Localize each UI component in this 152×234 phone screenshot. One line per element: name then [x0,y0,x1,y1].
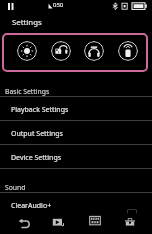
button[interactable]: ClearAudio+ [0,192,152,217]
staticText: 050 [53,1,64,9]
button[interactable]: Tools [121,212,139,230]
button[interactable]: Playback Settings [0,96,152,121]
staticText: Output Settings [11,129,63,139]
button[interactable]: Recent apps [50,212,68,230]
staticText: Basic Settings [5,87,50,96]
staticText: ClearAudio+ [11,201,52,211]
button[interactable]: Back [15,212,33,230]
button[interactable]: Sound effect [51,41,71,61]
button[interactable]: Headphones [84,41,104,61]
button[interactable]: Multi window [86,211,104,229]
staticText: Device Settings [11,153,62,163]
button[interactable]: Speaker [118,41,138,61]
staticText: Playback Settings [11,105,69,115]
button[interactable]: Brightness [17,41,37,61]
button[interactable]: Output Settings [0,120,152,145]
staticText: Settings [12,17,42,28]
button[interactable]: Device Settings [0,144,152,169]
staticText: Sound [5,183,26,192]
